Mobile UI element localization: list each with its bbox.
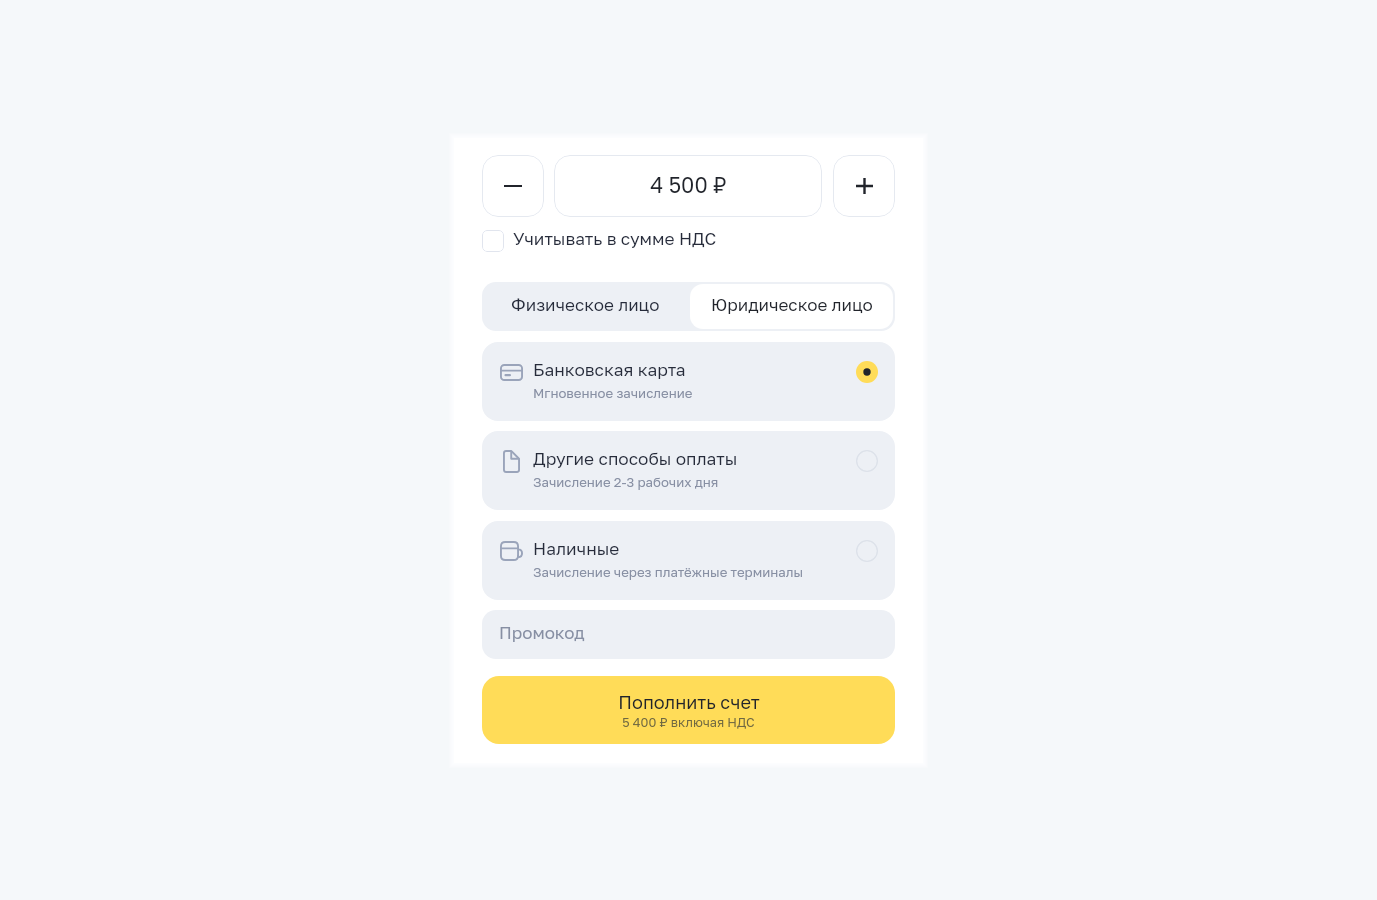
staticText: Пополнить счет [618, 691, 760, 713]
staticText: Зачисление через платёжные терминалы [533, 564, 804, 580]
button[interactable]: Другие способы оплаты [482, 431, 895, 510]
staticText: 4 500 ₽ [650, 172, 727, 198]
staticText: Зачисление 2-3 рабочих дня [533, 474, 719, 490]
button[interactable]: Уменьшить сумму [482, 155, 544, 217]
staticText: Учитывать в сумме НДС [513, 228, 717, 249]
button[interactable]: Увеличить сумму [833, 155, 895, 217]
staticText: Промокод [499, 622, 585, 642]
button[interactable]: Пополнить счет [482, 676, 895, 744]
staticText: Другие способы оплаты [533, 448, 738, 469]
button[interactable]: Учитывать в сумме НДС [482, 229, 717, 251]
staticText: 5 400 ₽ включая НДС [622, 715, 755, 730]
button[interactable]: 4 500 ₽ [554, 155, 822, 217]
button[interactable]: Промокод [482, 610, 895, 659]
button[interactable]: Юридическое лицо [690, 284, 893, 329]
staticText: Мгновенное зачисление [533, 385, 693, 401]
staticText: Банковская карта [533, 359, 686, 380]
staticText: Наличные [533, 538, 620, 559]
staticText: Физическое лицо [511, 294, 660, 315]
button[interactable]: Физическое лицо [482, 282, 688, 331]
staticText: Юридическое лицо [711, 294, 873, 315]
button[interactable]: Банковская карта [482, 342, 895, 421]
button[interactable]: Наличные [482, 521, 895, 600]
